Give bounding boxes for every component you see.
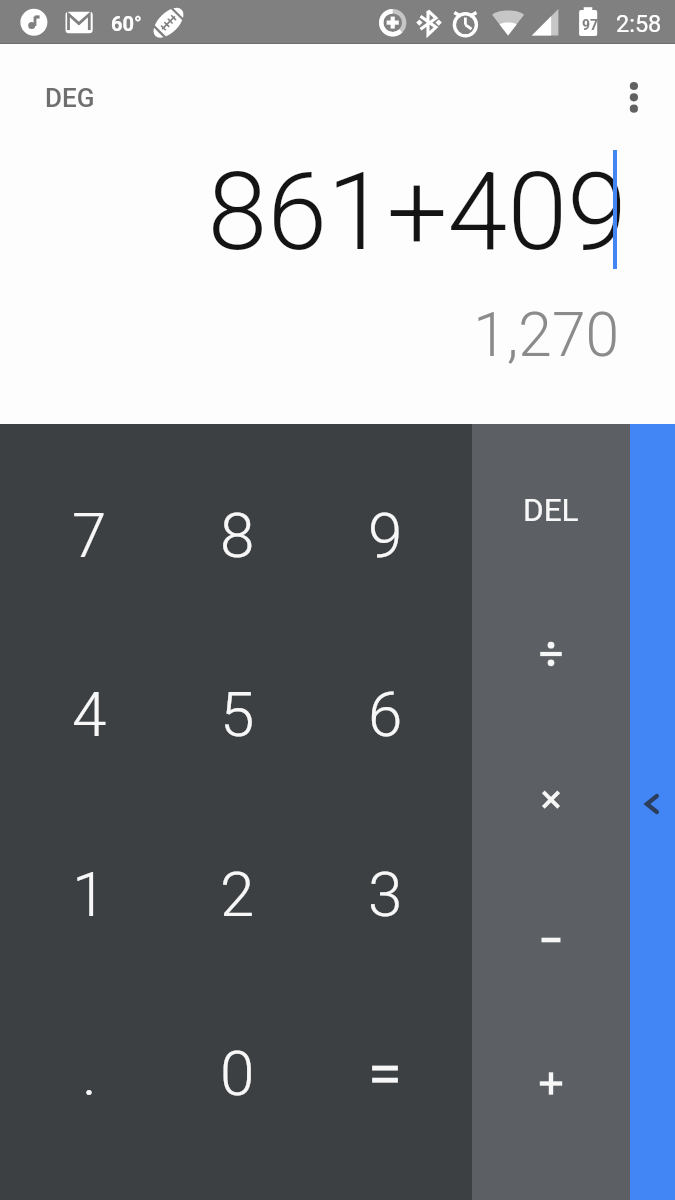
button[interactable] xyxy=(311,984,459,1163)
button[interactable]: 1 xyxy=(15,805,163,984)
button[interactable]: Add xyxy=(472,1012,630,1156)
staticText: 7 xyxy=(72,499,107,572)
staticText: 1 xyxy=(72,858,107,931)
button[interactable]: 6 xyxy=(311,625,459,804)
staticText: 1,270 xyxy=(0,300,619,371)
staticText: 8 xyxy=(220,499,255,572)
staticText: DEG xyxy=(45,83,95,113)
staticText: . xyxy=(82,1037,97,1110)
staticText: DEL xyxy=(523,492,579,529)
button[interactable]: 8 xyxy=(163,446,311,625)
staticText: 3 xyxy=(368,858,403,931)
staticText: 6 xyxy=(368,678,403,751)
staticText: 4 xyxy=(72,678,107,751)
staticText: 60° xyxy=(111,12,142,35)
button[interactable]: Subtract xyxy=(472,868,630,1012)
staticText: 2:58 xyxy=(616,10,662,38)
staticText: 0 xyxy=(220,1037,255,1110)
button[interactable]: 0 xyxy=(163,984,311,1163)
staticText: 5 xyxy=(220,678,255,751)
button[interactable]: DEG xyxy=(27,66,113,130)
button[interactable]: DEL xyxy=(472,438,630,582)
staticText: 861+409 xyxy=(0,149,627,275)
button[interactable]: 9 xyxy=(311,446,459,625)
button[interactable]: Divide xyxy=(472,581,630,725)
button[interactable]: Multiply xyxy=(472,725,630,869)
button[interactable]: 3 xyxy=(311,805,459,984)
button[interactable]: 5 xyxy=(163,625,311,804)
staticText: 2 xyxy=(220,858,255,931)
staticText: 9 xyxy=(368,499,403,572)
button[interactable]: More options xyxy=(605,70,661,126)
staticText: 97 xyxy=(582,17,599,33)
button[interactable]: Expand advanced pad xyxy=(630,424,675,1200)
button[interactable]: 7 xyxy=(15,446,163,625)
button[interactable]: 4 xyxy=(15,625,163,804)
button[interactable]: . xyxy=(15,984,163,1163)
button[interactable]: 2 xyxy=(163,805,311,984)
